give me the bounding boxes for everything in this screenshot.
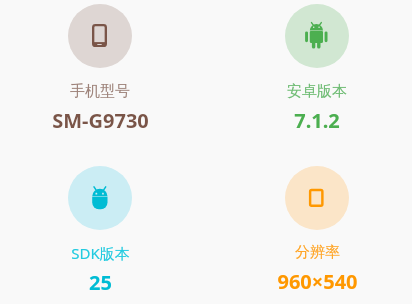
staticText: SDK版本 bbox=[71, 243, 130, 263]
staticText: 安卓版本 bbox=[287, 82, 347, 101]
staticText: 7.1.2 bbox=[294, 107, 340, 134]
button[interactable]: 分辨率 bbox=[217, 166, 412, 296]
staticText: 960×540 bbox=[277, 268, 358, 295]
staticText: 25 bbox=[89, 269, 112, 296]
staticText: 分辨率 bbox=[295, 243, 340, 262]
staticText: SM-G9730 bbox=[52, 107, 149, 134]
button[interactable]: 安卓版本 bbox=[217, 4, 412, 134]
staticText: 手机型号 bbox=[70, 82, 130, 101]
button[interactable]: SDK版本 bbox=[0, 166, 200, 296]
button[interactable]: 手机型号 bbox=[0, 4, 200, 134]
